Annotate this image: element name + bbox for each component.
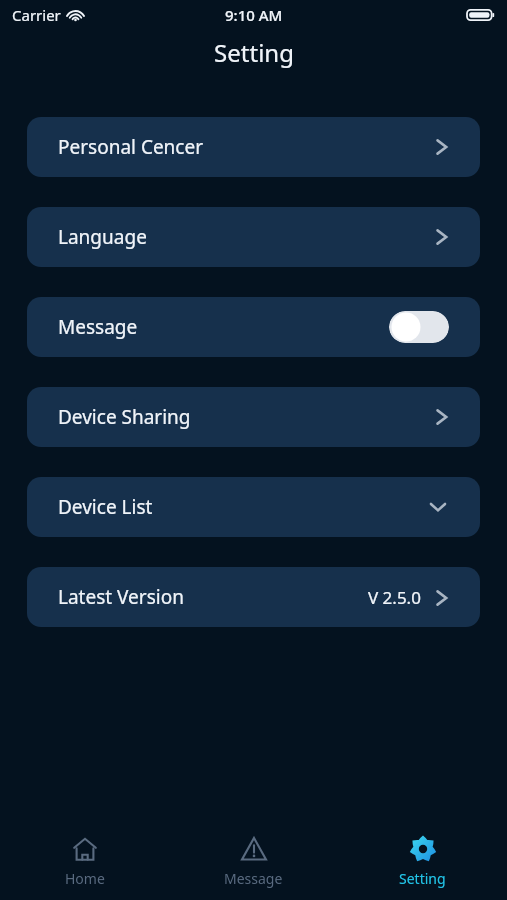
staticText: Home [65,869,105,888]
button[interactable]: Home [0,826,169,896]
staticText: Message [224,869,283,888]
other: Open [435,406,449,428]
other: Open [435,587,449,609]
button[interactable]: Message [169,826,338,896]
staticText: Carrier [12,5,61,25]
button[interactable]: Message notifications toggle [389,311,449,343]
button[interactable]: Device List [27,477,480,537]
other: Settings [408,834,438,864]
button[interactable]: Language [27,207,480,267]
other: Open [435,136,449,158]
other: Open [435,226,449,248]
staticText: Latest Version [58,584,184,610]
button[interactable]: Latest Version [27,567,480,627]
button[interactable]: Device Sharing [27,387,480,447]
other: Expand [427,500,449,514]
staticText: Setting [214,36,294,69]
staticText: Language [58,224,147,250]
staticText: Message [58,314,138,340]
button[interactable]: Personal Cencer [27,117,480,177]
staticText: 9:10 AM [225,5,283,25]
button[interactable]: Message [27,297,480,357]
staticText: Setting [399,869,446,888]
staticText: Device List [58,494,153,520]
staticText: Device Sharing [58,404,191,430]
staticText: V 2.5.0 [368,586,421,609]
staticText: Personal Cencer [58,134,204,160]
button[interactable]: Settings [338,826,507,896]
